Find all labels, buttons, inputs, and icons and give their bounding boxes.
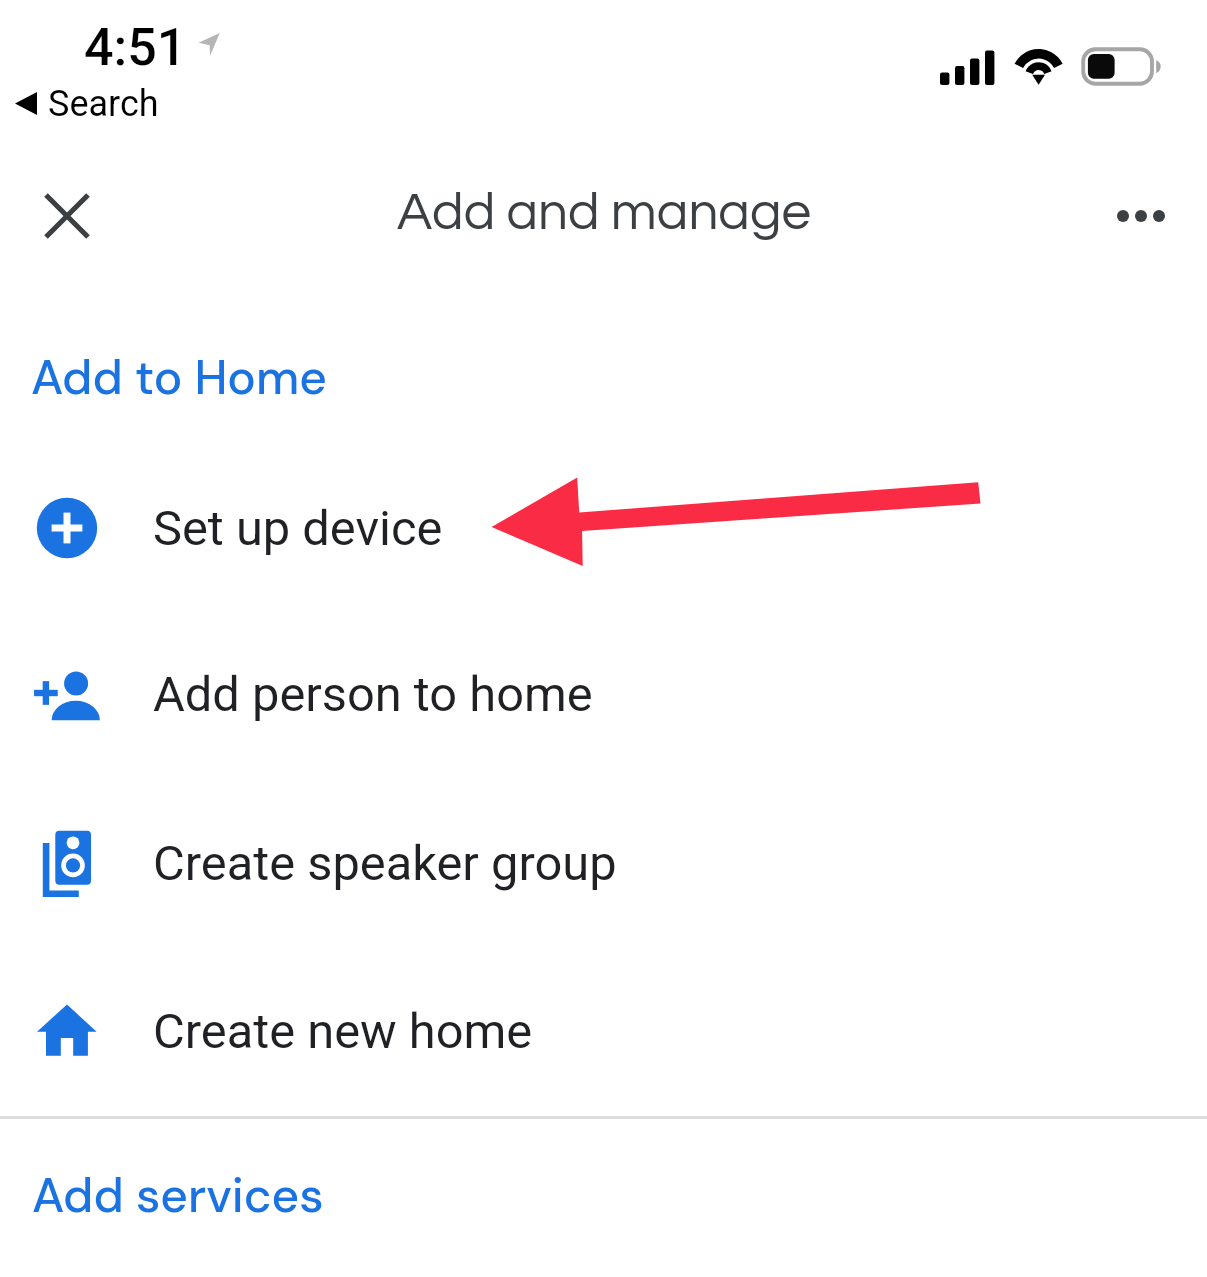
button[interactable]: Search (13, 83, 159, 123)
button[interactable]: Add person to home (0, 610, 1207, 770)
staticText: Add person to home (153, 666, 593, 723)
button[interactable]: Close (22, 171, 112, 261)
button[interactable]: Create speaker group (0, 779, 1207, 939)
button[interactable]: More options (1096, 171, 1186, 261)
button[interactable]: Create new home (0, 947, 1207, 1107)
staticText: 4:51 (84, 17, 187, 78)
staticText: Add and manage (397, 186, 811, 241)
button[interactable]: Add services (32, 1165, 324, 1227)
button[interactable]: Set up device (0, 444, 1207, 604)
staticText: Search (48, 83, 159, 123)
staticText: Add to Home (31, 347, 327, 409)
staticText: Set up device (153, 500, 443, 557)
button[interactable]: Add to Home (31, 347, 327, 409)
staticText: Add services (32, 1165, 324, 1227)
staticText: Create new home (153, 1003, 533, 1060)
staticText: Create speaker group (153, 835, 617, 892)
